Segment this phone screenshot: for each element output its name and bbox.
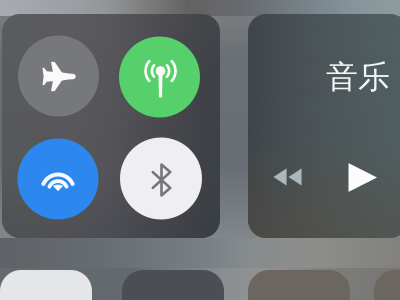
button[interactable]: Play bbox=[347, 162, 378, 193]
button[interactable]: Rewind bbox=[273, 168, 303, 188]
button[interactable]: Bluetooth bbox=[120, 137, 202, 219]
button[interactable]: Screen Mirroring bbox=[248, 270, 350, 300]
staticText: 音乐 bbox=[326, 57, 390, 97]
button[interactable]: Wi-Fi bbox=[17, 138, 98, 219]
button[interactable]: Cellular Data bbox=[119, 36, 200, 117]
button[interactable]: Airplane Mode bbox=[18, 35, 99, 116]
button[interactable]: Orientation Lock bbox=[0, 270, 92, 300]
button[interactable]: Flashlight bbox=[374, 270, 400, 300]
button[interactable]: Do Not Disturb bbox=[122, 270, 224, 300]
